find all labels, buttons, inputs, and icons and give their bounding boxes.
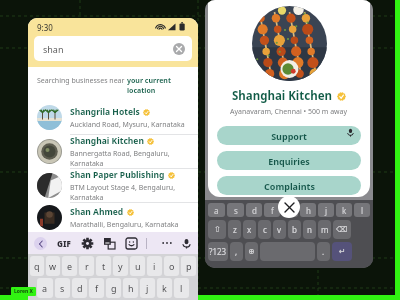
- staticText: m: [321, 224, 329, 235]
- staticText: your current location: [127, 76, 198, 96]
- button[interactable]: ,: [230, 242, 243, 261]
- staticText: t: [102, 260, 106, 272]
- staticText: a: [42, 282, 48, 294]
- button[interactable]: y: [113, 256, 128, 276]
- button[interactable]: More options: [161, 237, 173, 249]
- button[interactable]: d: [246, 203, 262, 217]
- button[interactable]: ⊕: [245, 242, 258, 261]
- button[interactable]: o: [164, 256, 179, 276]
- button[interactable]: x: [243, 220, 256, 239]
- staticText: y: [118, 260, 123, 272]
- staticText: Shanghai Kitchen: [232, 88, 333, 104]
- staticText: h: [128, 282, 134, 294]
- staticText: k: [342, 205, 347, 216]
- staticText: w: [49, 260, 57, 272]
- button[interactable]: a: [208, 203, 225, 217]
- button[interactable]: l: [354, 203, 370, 217]
- button[interactable]: f: [89, 278, 104, 298]
- staticText: c: [263, 224, 267, 235]
- button[interactable]: Shan Paper Publishing: [28, 169, 198, 203]
- button[interactable]: h: [123, 278, 138, 298]
- button[interactable]: shan: [34, 36, 192, 61]
- staticText: Marathalli, Bengaluru, Karnataka: [70, 220, 179, 230]
- staticText: j: [325, 205, 328, 216]
- button[interactable]: Shangrila Hotels: [28, 101, 198, 135]
- button[interactable]: Shanghai Kitchen: [28, 135, 198, 169]
- staticText: g: [111, 282, 117, 294]
- staticText: Enquiries: [268, 155, 310, 167]
- button[interactable]: g: [106, 278, 121, 298]
- button[interactable]: k: [157, 278, 172, 298]
- button[interactable]: GIF: [57, 238, 71, 249]
- button[interactable]: Loren X: [14, 288, 33, 295]
- button[interactable]: j: [140, 278, 155, 298]
- button[interactable]: u: [130, 256, 145, 276]
- button[interactable]: Complaints: [217, 176, 361, 195]
- button[interactable]: Enquiries: [217, 151, 361, 170]
- button[interactable]: Clear search: [173, 43, 185, 55]
- staticText: 9:30: [37, 22, 53, 33]
- button[interactable]: Voice input: [181, 238, 192, 249]
- button[interactable]: Settings: [82, 238, 93, 249]
- button[interactable]: m: [318, 220, 331, 239]
- button[interactable]: r: [79, 256, 94, 276]
- staticText: e: [67, 260, 73, 272]
- button[interactable]: c: [258, 220, 271, 239]
- button[interactable]: Close: [278, 196, 300, 218]
- staticText: ,: [235, 246, 238, 257]
- button[interactable]: ⇧: [208, 220, 226, 239]
- staticText: Shan Paper Publishing: [70, 169, 165, 181]
- button[interactable]: v: [273, 220, 286, 239]
- button[interactable]: f: [264, 203, 280, 217]
- button[interactable]: q: [30, 256, 44, 276]
- button[interactable]: Voice input: [346, 128, 355, 137]
- staticText: s: [234, 205, 238, 216]
- staticText: Ayanavaram, Chennai • 500 m away: [230, 107, 348, 117]
- button[interactable]: ?123: [208, 242, 228, 261]
- button[interactable]: ⌫: [333, 220, 351, 239]
- button[interactable]: i: [147, 256, 162, 276]
- staticText: v: [277, 224, 282, 235]
- button[interactable]: s: [227, 203, 244, 217]
- button[interactable]: e: [62, 256, 77, 276]
- staticText: ?123: [209, 246, 227, 257]
- button[interactable]: Stickers: [126, 238, 137, 249]
- button[interactable]: Collapse toolbar: [34, 237, 47, 250]
- button[interactable]: g: [282, 203, 298, 217]
- button[interactable]: Translate: [104, 238, 115, 249]
- staticText: ↵: [339, 247, 346, 256]
- button[interactable]: t: [96, 256, 111, 276]
- staticText: s: [60, 282, 65, 294]
- button[interactable]: Shan Ahmed: [28, 203, 198, 232]
- button[interactable]: w: [46, 256, 60, 276]
- staticText: i: [153, 260, 156, 272]
- button[interactable]: b: [288, 220, 301, 239]
- button[interactable]: .: [317, 242, 330, 261]
- staticText: Loren X: [14, 288, 33, 295]
- button[interactable]: a: [37, 278, 53, 298]
- staticText: Support: [271, 130, 307, 142]
- button[interactable]: d: [72, 278, 87, 298]
- staticText: d: [77, 282, 83, 294]
- staticText: ⇧: [214, 225, 221, 234]
- staticText: Searching businesses near: [37, 76, 127, 86]
- button[interactable]: s: [55, 278, 70, 298]
- button[interactable]: l: [174, 278, 189, 298]
- button[interactable]: k: [336, 203, 352, 217]
- button[interactable]: Support: [217, 126, 361, 145]
- staticText: n: [307, 224, 312, 235]
- button[interactable]: p: [181, 256, 196, 276]
- staticText: Auckland Road, Mysuru, Karnataka: [70, 120, 185, 130]
- button[interactable]: j: [318, 203, 334, 217]
- staticText: p: [186, 260, 192, 272]
- staticText: h: [306, 205, 311, 216]
- staticText: Bannergatta Road, Bengaluru, Karnataka: [70, 149, 191, 168]
- staticText: Shan Ahmed: [70, 206, 124, 218]
- button[interactable]: n: [303, 220, 316, 239]
- staticText: shan: [43, 43, 64, 55]
- button[interactable]: ↵: [332, 242, 352, 261]
- button[interactable]: h: [300, 203, 316, 217]
- staticText: Shanghai Kitchen: [70, 135, 144, 147]
- button[interactable]: z: [228, 220, 241, 239]
